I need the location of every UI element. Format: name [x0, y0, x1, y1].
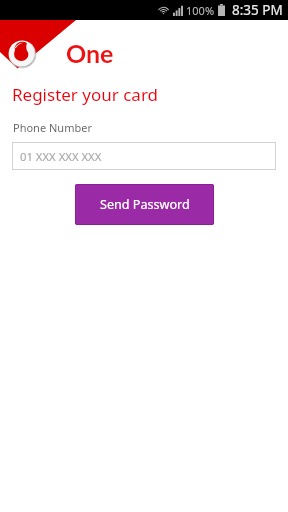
- button[interactable]: Send Password: [75, 184, 214, 225]
- button[interactable]: 01 XXX XXX XXX: [12, 142, 276, 170]
- staticText: 01 XXX XXX XXX: [20, 149, 102, 164]
- staticText: One: [66, 38, 114, 68]
- other: Wi-Fi: [157, 4, 170, 16]
- staticText: 100%: [186, 3, 215, 18]
- staticText: Phone Number: [13, 120, 92, 135]
- other: Battery: [218, 4, 225, 16]
- other: Mobile signal: [173, 5, 184, 16]
- staticText: Send Password: [100, 196, 190, 213]
- staticText: 8:35 PM: [232, 1, 283, 19]
- staticText: Register your card: [12, 83, 159, 106]
